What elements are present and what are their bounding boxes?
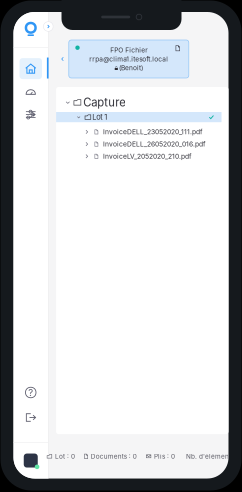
button[interactable]: Profil utilisateur: [13, 443, 48, 478]
staticText: InvoiceLV_2052020_210.pdf: [103, 152, 191, 160]
staticText: Lot : 0: [55, 452, 75, 460]
staticText: Capture: [83, 96, 126, 109]
staticText: Plis : 0: [154, 452, 175, 460]
staticText: ?: [28, 387, 33, 398]
staticText: rrpa@clima1.itesoft.local: [89, 55, 168, 63]
button[interactable]: Accueil: [13, 58, 48, 79]
button[interactable]: InvoiceDELL_26052020_016.pdf: [56, 138, 228, 150]
staticText: Nb. d'éléments: [186, 452, 234, 460]
button[interactable]: Déconnexion: [13, 411, 48, 424]
button[interactable]: Aide: [13, 386, 48, 399]
button[interactable]: Lot 1: [56, 112, 228, 122]
button[interactable]: Lot FPO Fichier: [69, 40, 189, 78]
staticText: InvoiceDELL_26052020_016.pdf: [103, 140, 205, 148]
staticText: Lot 1: [92, 113, 107, 122]
staticText: InvoiceDELL_23052020_111.pdf: [103, 128, 202, 136]
button[interactable]: Tableau de bord: [13, 81, 48, 102]
button[interactable]: Capture: [56, 96, 228, 108]
staticText: Documents : 0: [91, 452, 137, 460]
button[interactable]: InvoiceLV_2052020_210.pdf: [56, 150, 228, 162]
staticText: (Benoit): [119, 64, 143, 72]
button[interactable]: Déplier le menu: [42, 20, 54, 32]
button[interactable]: InvoiceDELL_23052020_111.pdf: [56, 126, 228, 138]
button[interactable]: Précédent: [60, 54, 66, 64]
button[interactable]: Paramètres: [13, 104, 48, 125]
staticText: FPO Fichier: [110, 46, 147, 54]
button[interactable]: Accueil Itesoft: [13, 12, 48, 47]
